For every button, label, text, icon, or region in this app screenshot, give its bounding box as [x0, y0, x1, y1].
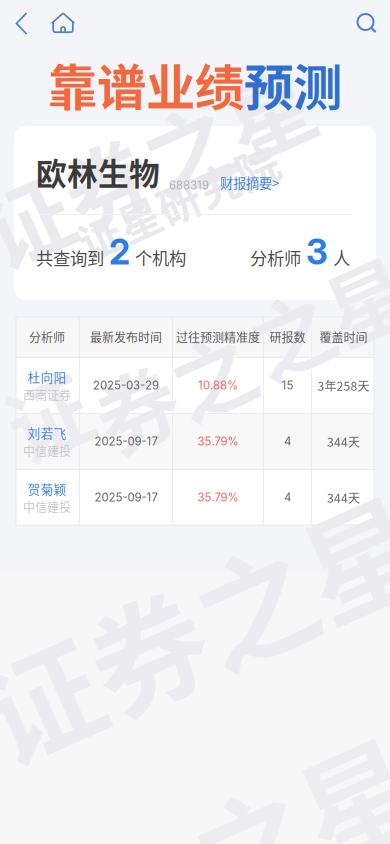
staticText: 刘若飞 [27, 424, 66, 442]
staticText: 2025-03-29 [93, 379, 159, 392]
button[interactable]: 刘若飞 [15, 414, 375, 469]
staticText: 证券之星 [0, 540, 390, 710]
staticText: 10.88% [198, 379, 238, 392]
button[interactable]: Back [4, 10, 42, 36]
staticText: 个机构 [135, 245, 186, 270]
staticText: 2025-09-17 [94, 435, 157, 448]
staticText: 2025-09-17 [94, 491, 157, 504]
staticText: 西南证券 [23, 386, 71, 403]
staticText: 中信建投 [23, 498, 71, 515]
staticText: 35.79% [197, 435, 238, 448]
staticText: 3年258天 [317, 377, 369, 394]
staticText: 35.79% [197, 491, 238, 504]
staticText: 证星研究院 [71, 170, 286, 232]
staticText: 证券之星 [0, 100, 323, 227]
staticText: 344天 [327, 433, 360, 450]
staticText: 证 [6, 355, 89, 475]
button[interactable]: Home [42, 10, 84, 36]
button[interactable]: Search [348, 10, 386, 36]
staticText: 最新发布时间 [90, 328, 162, 346]
staticText: 688319 [169, 178, 209, 192]
staticText: 分析师 [29, 328, 65, 346]
staticText: 欧林生物 [36, 150, 160, 194]
staticText: 之星 [189, 735, 390, 844]
staticText: 靠谱业绩 [48, 48, 244, 120]
button[interactable]: 财报摘要> [209, 173, 279, 194]
staticText: 财报摘要> [220, 173, 279, 192]
staticText: 4 [284, 435, 291, 448]
staticText: 2 [109, 231, 130, 273]
staticText: 覆盖时间 [319, 328, 367, 346]
staticText: 分析师 [250, 245, 301, 270]
staticText: 过往预测精准度 [176, 328, 260, 346]
staticText: 共查询到 [36, 245, 104, 270]
staticText: 4 [284, 491, 291, 504]
button[interactable]: 杜向阳 [15, 358, 375, 413]
staticText: 券之 [91, 330, 257, 450]
staticText: 344天 [327, 489, 360, 506]
staticText: 研报数 [269, 328, 305, 346]
staticText: 贺菊颖 [27, 480, 66, 498]
staticText: 3 [306, 231, 328, 273]
staticText: 15 [281, 379, 293, 392]
staticText: 中信建投 [23, 442, 71, 459]
staticText: 杜向阳 [27, 368, 66, 386]
staticText: 预测 [244, 48, 342, 120]
staticText: 人 [333, 245, 350, 270]
button[interactable]: 贺菊颖 [15, 470, 375, 525]
staticText: 之星 [246, 255, 390, 375]
